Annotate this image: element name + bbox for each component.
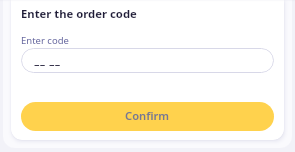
staticText: Enter the order code: [21, 6, 137, 21]
staticText: Confirm: [125, 108, 170, 123]
button[interactable]: Confirm: [21, 102, 274, 131]
staticText: –– ––: [34, 56, 61, 71]
staticText: Enter code: [21, 34, 69, 47]
button[interactable]: Order code input field: [21, 48, 274, 73]
